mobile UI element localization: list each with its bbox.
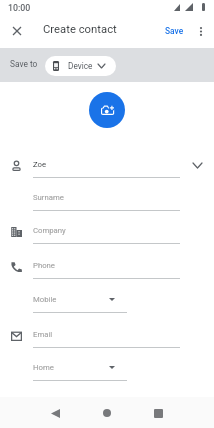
button[interactable]: Recents [144,399,172,427]
staticText: Surname [33,193,64,202]
button[interactable]: Company [0,218,214,251]
staticText: Home [33,363,54,372]
staticText: Email [33,330,53,339]
staticText: Create contact [43,23,117,36]
button[interactable]: Surname [0,185,214,218]
button[interactable]: Back [41,399,69,427]
staticText: Device [68,61,93,71]
button[interactable]: More options [189,19,213,43]
button[interactable]: Email [0,322,214,355]
button[interactable]: Mobile [0,287,214,320]
button[interactable]: Device [45,56,116,76]
staticText: Company [33,226,66,235]
button[interactable]: Home [93,399,121,427]
button[interactable]: Close [4,18,30,44]
button[interactable]: Home [0,355,214,388]
staticText: 10:00 [8,3,31,13]
button[interactable]: Zoe [0,152,214,185]
staticText: Mobile [33,295,57,304]
staticText: Zoe [33,160,47,169]
staticText: Save [165,26,184,36]
staticText: Phone [33,261,55,270]
button[interactable]: Add photo [89,92,125,128]
button[interactable]: Phone [0,253,214,286]
button[interactable]: Save [161,23,188,39]
staticText: Save to [10,59,38,69]
